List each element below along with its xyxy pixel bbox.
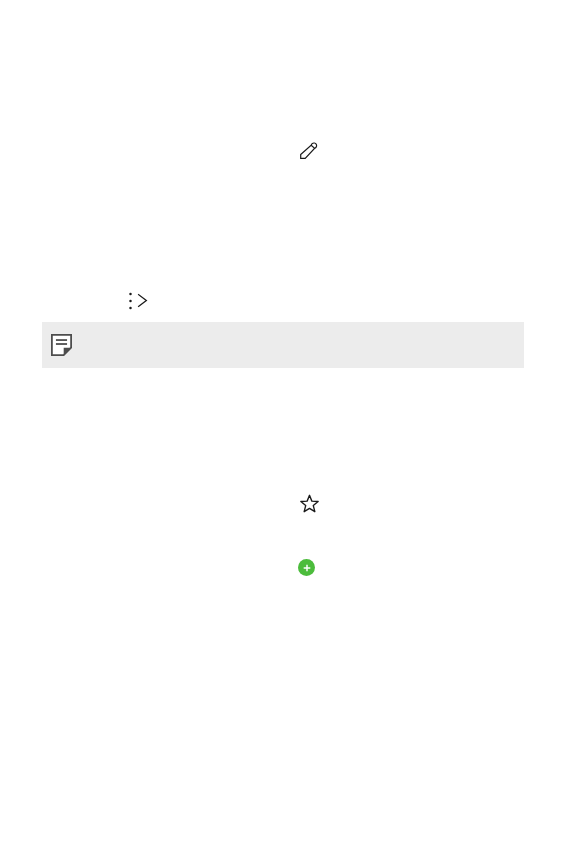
button[interactable]: New note <box>298 559 315 576</box>
button[interactable]: Add to favourites <box>288 482 331 525</box>
button[interactable]: Edit <box>287 129 330 172</box>
button[interactable]: More options <box>120 285 140 316</box>
button[interactable]: Expand section <box>133 285 151 316</box>
button[interactable] <box>42 322 524 368</box>
